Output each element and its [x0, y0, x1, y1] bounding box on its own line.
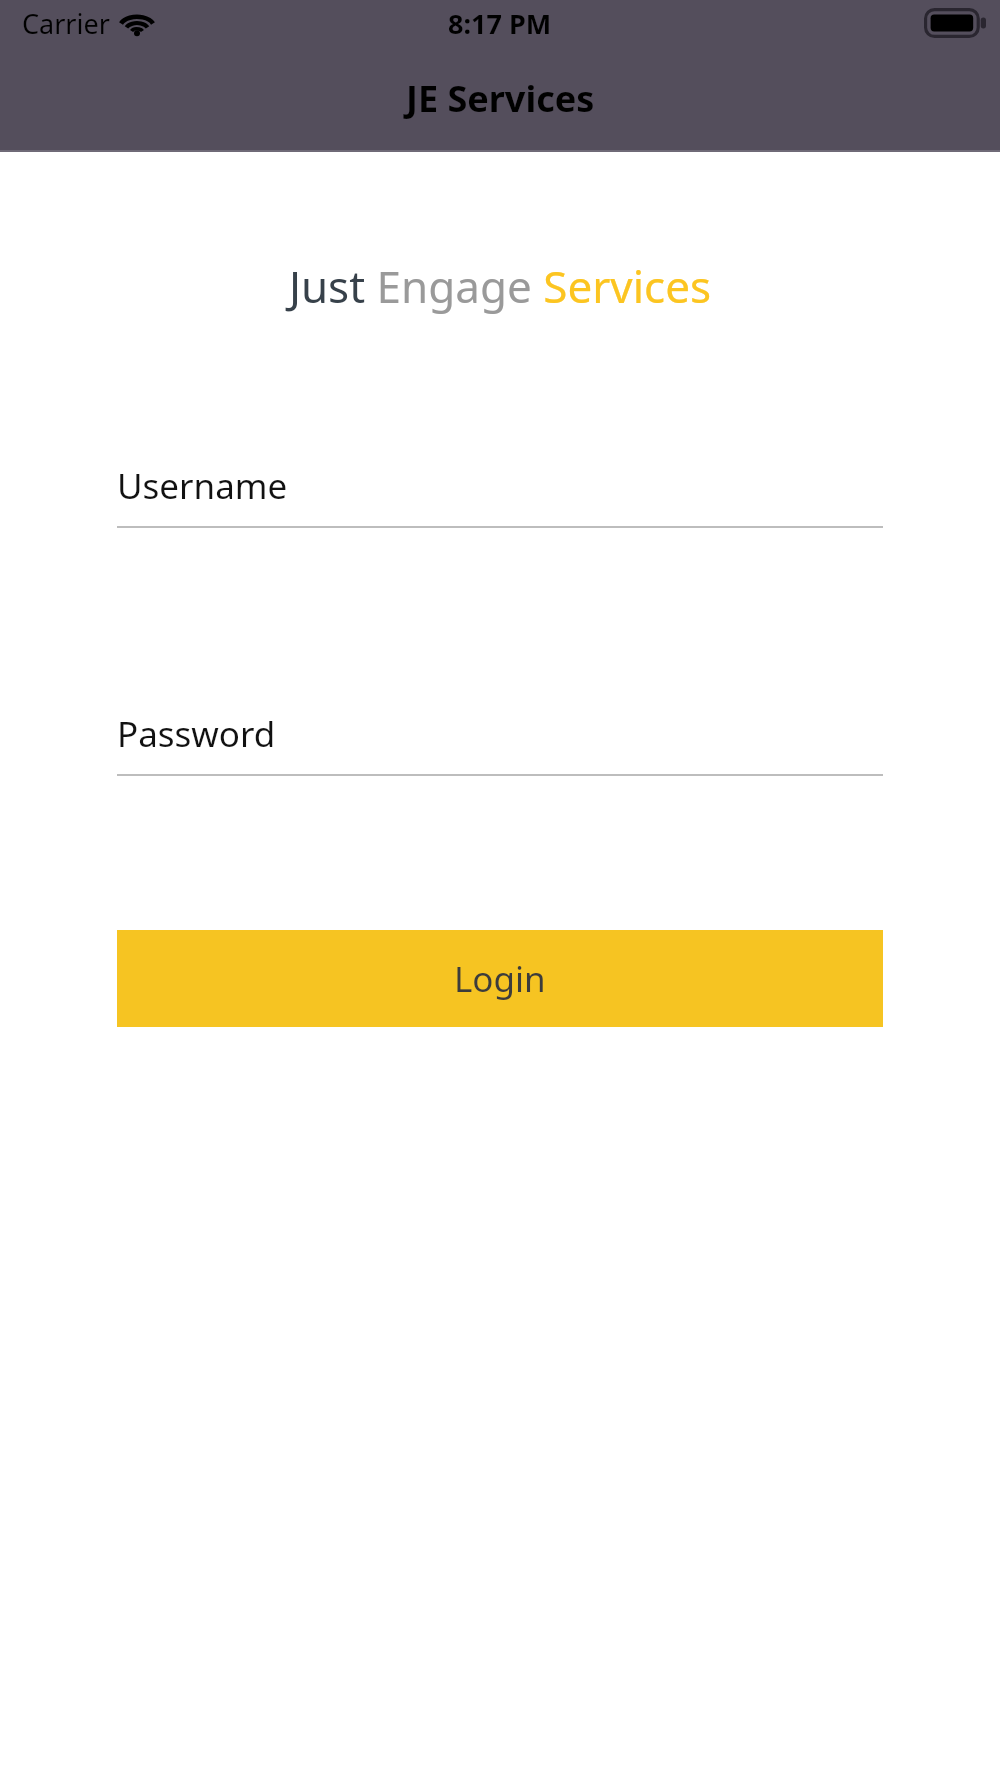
staticText: Password — [117, 710, 276, 758]
staticText: Just Engage Services — [0, 256, 1000, 316]
button[interactable]: Username — [117, 462, 883, 528]
staticText: 8:17 PM — [448, 5, 552, 42]
button[interactable]: Login — [117, 930, 883, 1027]
staticText: Username — [117, 462, 288, 510]
staticText: Carrier — [22, 5, 110, 42]
button[interactable]: Password — [117, 710, 883, 776]
staticText: Login — [454, 955, 546, 1003]
staticText: JE Services — [406, 74, 595, 123]
